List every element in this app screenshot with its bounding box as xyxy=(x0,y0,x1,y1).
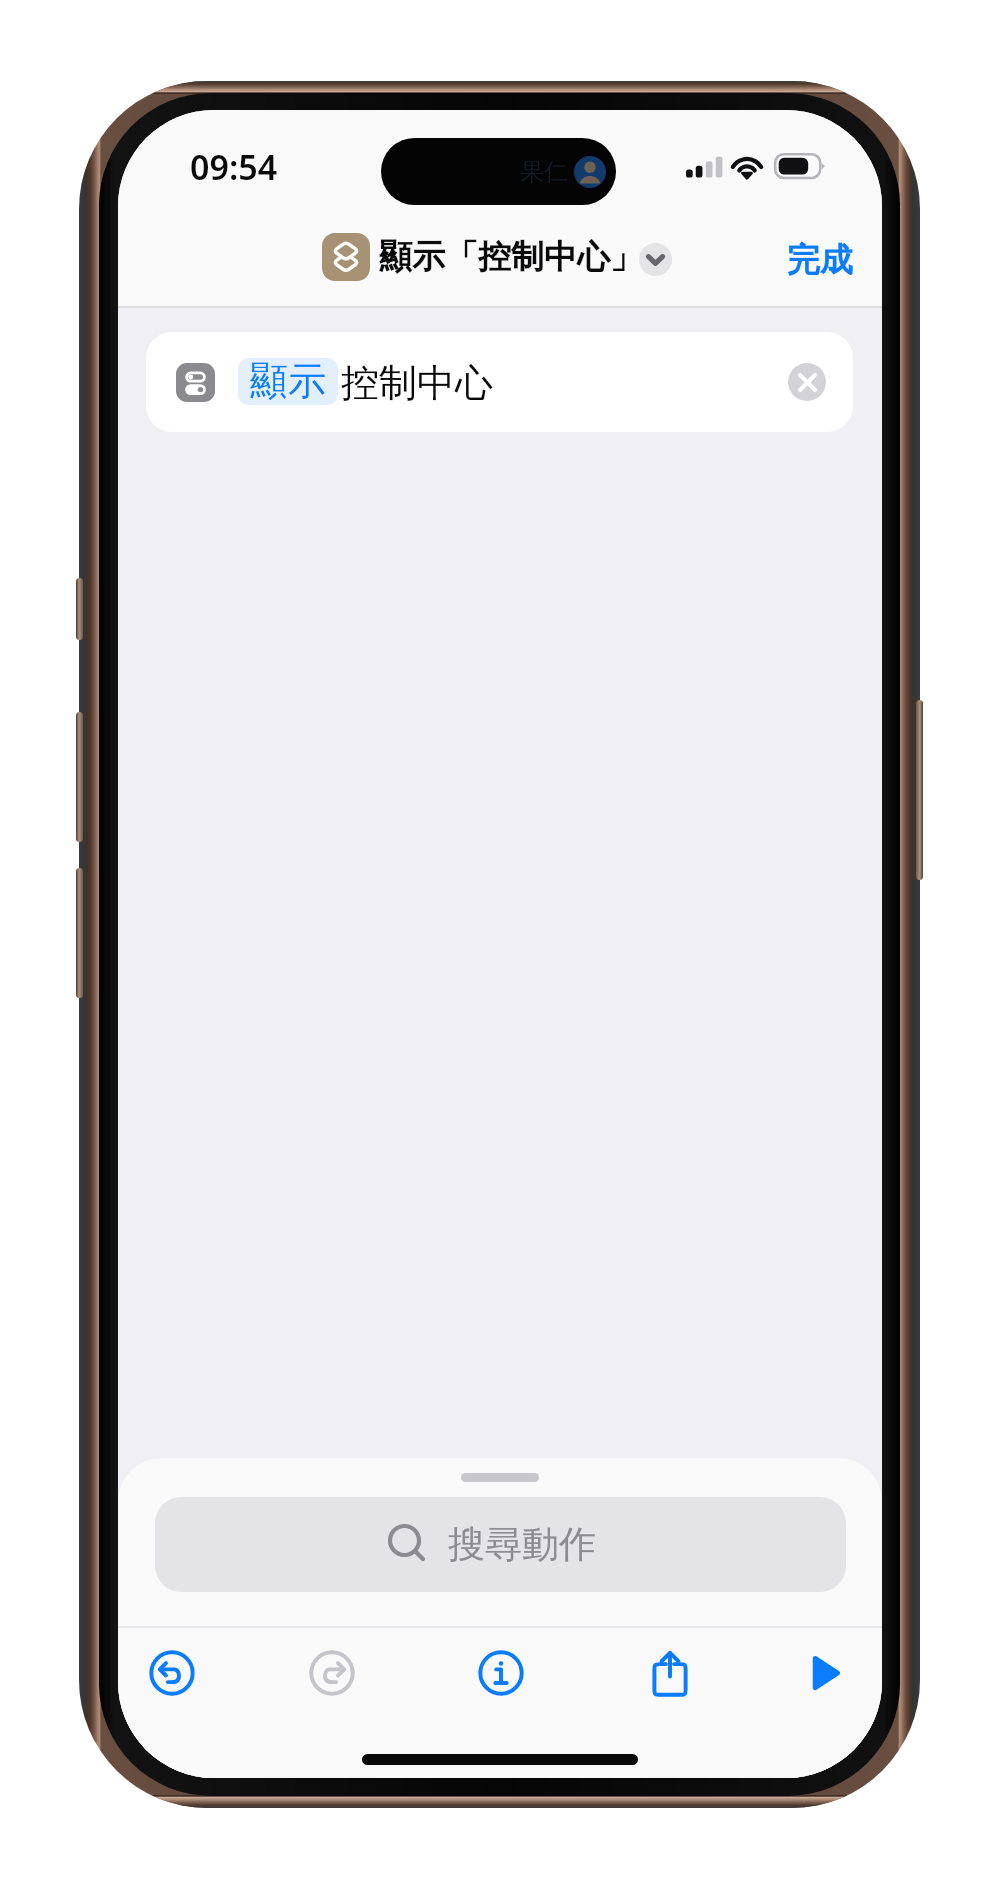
button[interactable]: Undo xyxy=(130,1619,214,1727)
staticText: 搜尋動作 xyxy=(448,1521,596,1568)
button[interactable]: Show options xyxy=(639,243,672,276)
button[interactable]: 搜尋動作 xyxy=(155,1497,846,1592)
staticText: 09:54 xyxy=(190,144,278,190)
button[interactable]: Run xyxy=(782,1619,866,1727)
staticText: 顯示「控制中心」 xyxy=(379,236,643,278)
button[interactable]: 完成 xyxy=(768,221,872,299)
staticText: 果仁 xyxy=(520,157,568,187)
button[interactable]: Info xyxy=(459,1619,543,1727)
button[interactable]: 顯示 xyxy=(146,332,853,432)
staticText: 完成 xyxy=(787,239,853,281)
staticText: 控制中心 xyxy=(341,359,493,407)
staticText: 顯示 xyxy=(250,358,326,404)
button[interactable]: Redo xyxy=(290,1619,374,1727)
button[interactable]: Remove action xyxy=(788,363,826,401)
button[interactable]: Share xyxy=(628,1619,712,1727)
